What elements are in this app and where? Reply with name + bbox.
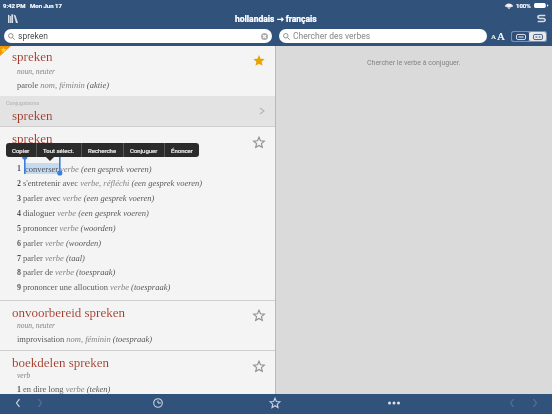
button[interactable]: Back <box>10 395 26 411</box>
staticText: Conjugaisons <box>6 100 40 106</box>
staticText: 8 parler de verbe (toespraak) <box>17 267 116 276</box>
staticText: 100% <box>516 2 531 9</box>
button[interactable]: Conjugaisons <box>0 96 276 126</box>
staticText: verbe (een gesprek voeren) <box>60 164 152 173</box>
button[interactable]: Favorite <box>251 307 267 323</box>
staticText: 9:42 PM <box>3 2 26 9</box>
staticText: verb <box>17 371 31 379</box>
staticText: parole nom, féminin (aktie) <box>17 80 110 89</box>
staticText: improvisation nom, féminin (toespraak) <box>17 334 153 343</box>
staticText: spreken <box>12 108 53 122</box>
button[interactable]: Favorite <box>251 358 267 374</box>
staticText: Copier <box>12 147 30 154</box>
staticText: Conjuguer <box>130 147 158 154</box>
button[interactable]: Next page <box>527 395 543 411</box>
button[interactable]: Tout sélect. <box>37 143 81 157</box>
staticText: 4 dialoguer verbe (een gesprek voeren) <box>17 208 149 217</box>
button[interactable]: Text size <box>491 29 505 43</box>
staticText: Mon Jun 17 <box>30 2 62 9</box>
staticText: Chercher le verbe à conjuguer. <box>367 59 461 67</box>
button[interactable]: Chercher des verbes <box>283 29 483 43</box>
button[interactable]: Swap languages <box>532 11 550 26</box>
staticText: spreken <box>12 131 53 145</box>
button[interactable]: Split pane <box>529 32 546 41</box>
staticText: 6 parler verbe (woorden) <box>17 238 102 247</box>
staticText: boekdelen spreken <box>12 355 110 369</box>
staticText: spreken <box>12 49 53 63</box>
button[interactable]: Recherche <box>82 143 123 157</box>
staticText: 7 parler verbe (taal) <box>17 253 85 262</box>
staticText: hollandais → français <box>235 14 317 24</box>
button[interactable]: More <box>386 395 402 411</box>
staticText: Recherche <box>88 147 117 154</box>
staticText: Énoncer <box>171 147 193 154</box>
staticText: 2 s'entretenir avec verbe, réfléchi (een… <box>17 178 203 187</box>
button[interactable]: Library <box>4 11 22 26</box>
staticText: converser <box>25 164 59 173</box>
staticText: 3 parler avec verbe (een gesprek voeren) <box>17 193 155 202</box>
button[interactable]: Previous page <box>504 395 520 411</box>
staticText: 1 en dire long verbe (teken) <box>17 384 111 393</box>
button[interactable]: History <box>150 395 166 411</box>
button[interactable]: Favorite <box>251 52 267 68</box>
button[interactable]: Forward <box>32 395 48 411</box>
button[interactable]: Single pane <box>512 32 529 41</box>
button[interactable]: spreken <box>8 29 268 43</box>
staticText: A <box>497 30 505 42</box>
button[interactable]: Favorites <box>267 395 283 411</box>
button[interactable]: Énoncer <box>165 143 199 157</box>
staticText: spreken <box>18 31 48 41</box>
staticText: Tout sélect. <box>43 147 75 154</box>
button[interactable]: Favorite <box>251 134 267 150</box>
staticText: noun, neuter <box>17 321 55 329</box>
staticText: Chercher des verbes <box>293 31 371 41</box>
staticText: 5 prononcer verbe (woorden) <box>17 223 116 232</box>
staticText: noun, neuter <box>17 67 55 75</box>
staticText: A <box>491 33 497 41</box>
staticText: onvoorbereid spreken <box>12 305 125 319</box>
button[interactable]: Conjuguer <box>124 143 164 157</box>
staticText: 9 prononcer une allocution verbe (toespr… <box>17 282 171 291</box>
staticText: 1 <box>17 164 21 173</box>
button[interactable]: Copier <box>6 143 36 157</box>
